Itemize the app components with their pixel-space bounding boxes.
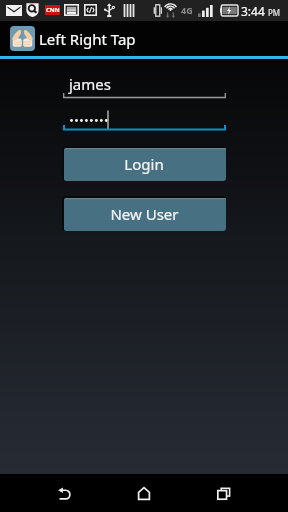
staticText: james: [69, 74, 111, 94]
staticText: Login: [124, 154, 164, 174]
button[interactable]: Back: [24, 474, 104, 512]
button[interactable]: App icon: [10, 26, 35, 51]
staticText: 3:44: [241, 3, 265, 19]
button[interactable]: Home: [104, 474, 184, 512]
button[interactable]: New User: [62, 196, 226, 231]
staticText: Left Right Tap: [39, 29, 136, 49]
staticText: PM: [268, 7, 281, 18]
button[interactable]: Login: [62, 146, 226, 181]
staticText: New User: [110, 204, 179, 224]
button[interactable]: Recent apps: [184, 474, 264, 512]
staticText: 4G: [181, 4, 193, 16]
staticText: CNN: [46, 6, 60, 14]
